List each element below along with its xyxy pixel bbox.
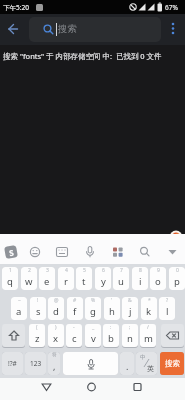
staticText: : bbox=[110, 324, 112, 331]
button[interactable] bbox=[4, 20, 22, 38]
staticText: , bbox=[53, 360, 56, 372]
button[interactable]: 8 bbox=[132, 267, 148, 290]
staticText: j bbox=[129, 305, 132, 318]
staticText: 1 bbox=[9, 267, 12, 274]
staticText: t bbox=[82, 275, 86, 288]
staticText: c bbox=[72, 332, 77, 345]
staticText: 2 bbox=[28, 267, 31, 274]
staticText: S bbox=[8, 247, 15, 258]
button[interactable]: ) bbox=[48, 324, 64, 347]
staticText: q bbox=[7, 275, 13, 288]
button[interactable]: 4 bbox=[58, 267, 74, 290]
staticText: 下午5:20 bbox=[3, 3, 29, 12]
staticText: a bbox=[16, 305, 22, 318]
staticText: @ bbox=[54, 297, 59, 304]
staticText: 搜索 "fonts" 于 内部存储空间 中: 已找到 0 文件 bbox=[3, 51, 162, 61]
staticText: r bbox=[64, 275, 68, 288]
button[interactable]: % bbox=[85, 297, 101, 320]
staticText: 7 bbox=[120, 267, 123, 274]
staticText: ; bbox=[129, 324, 131, 331]
staticText: z bbox=[35, 332, 40, 345]
staticText: x bbox=[53, 332, 59, 345]
button[interactable]: 5 bbox=[76, 267, 92, 290]
button[interactable] bbox=[81, 376, 102, 397]
button[interactable]: 9 bbox=[150, 267, 166, 290]
button[interactable]: S bbox=[4, 245, 18, 259]
button[interactable]: ~ bbox=[11, 297, 27, 320]
staticText: d bbox=[53, 305, 59, 318]
staticText: k bbox=[146, 305, 152, 318]
staticText: 8 bbox=[139, 267, 142, 274]
staticText: 3 bbox=[46, 267, 49, 274]
button[interactable] bbox=[127, 376, 148, 397]
button[interactable] bbox=[164, 19, 182, 37]
button[interactable]: 7 bbox=[113, 267, 129, 290]
button[interactable]: !?# bbox=[2, 352, 23, 375]
button[interactable]: ? bbox=[159, 297, 175, 320]
button[interactable]: 符 bbox=[48, 352, 60, 375]
button[interactable]: 1 bbox=[2, 267, 18, 290]
staticText: ! bbox=[37, 297, 39, 304]
staticText: ( bbox=[36, 324, 38, 331]
staticText: ? bbox=[166, 297, 169, 304]
button[interactable]: : bbox=[103, 324, 119, 347]
button[interactable]: ! bbox=[30, 297, 46, 320]
button[interactable]: @ bbox=[48, 297, 64, 320]
staticText: # bbox=[73, 297, 77, 304]
button[interactable] bbox=[63, 352, 118, 375]
button[interactable]: * bbox=[141, 297, 157, 320]
staticText: 中 bbox=[140, 354, 146, 361]
staticText: 搜索 bbox=[165, 359, 180, 368]
staticText: 6 bbox=[102, 267, 105, 274]
button[interactable]: 中 bbox=[136, 352, 157, 375]
staticText: * bbox=[148, 297, 151, 304]
button[interactable]: . bbox=[120, 352, 134, 375]
button[interactable]: - bbox=[66, 324, 82, 347]
button[interactable]: _ bbox=[85, 324, 101, 347]
staticText: 0 bbox=[176, 267, 179, 274]
staticText: p bbox=[174, 275, 180, 288]
staticText: & bbox=[128, 297, 132, 304]
button[interactable]: 6 bbox=[95, 267, 111, 290]
staticText: 英 bbox=[147, 364, 154, 373]
button[interactable]: ; bbox=[122, 324, 138, 347]
button[interactable]: 3 bbox=[39, 267, 55, 290]
staticText: o bbox=[155, 275, 161, 288]
staticText: 123 bbox=[30, 359, 42, 368]
staticText: . bbox=[126, 360, 129, 372]
button[interactable]: 搜索 bbox=[160, 352, 184, 375]
staticText: 9 bbox=[157, 267, 160, 274]
staticText: u bbox=[118, 275, 124, 288]
button[interactable]: 搜索 bbox=[29, 17, 161, 42]
staticText: h bbox=[109, 305, 115, 318]
staticText: m bbox=[144, 332, 153, 345]
button[interactable] bbox=[161, 324, 184, 347]
staticText: !?# bbox=[8, 359, 17, 368]
staticText: v bbox=[91, 332, 96, 345]
staticText: 4 bbox=[65, 267, 68, 274]
button[interactable]: 123 bbox=[25, 352, 46, 375]
staticText: s bbox=[36, 305, 41, 318]
staticText: % bbox=[91, 297, 96, 304]
staticText: ' bbox=[111, 297, 113, 304]
staticText: e bbox=[44, 275, 50, 288]
staticText: y bbox=[101, 275, 106, 288]
staticText: f bbox=[73, 305, 77, 318]
staticText: 67% bbox=[165, 3, 178, 12]
button[interactable]: / bbox=[140, 324, 156, 347]
staticText: n bbox=[127, 332, 133, 345]
staticText: ~ bbox=[18, 297, 21, 304]
button[interactable] bbox=[36, 376, 57, 397]
staticText: - bbox=[73, 324, 75, 331]
button[interactable]: ( bbox=[29, 324, 45, 347]
button[interactable] bbox=[2, 324, 25, 347]
button[interactable]: 2 bbox=[21, 267, 37, 290]
staticText: _ bbox=[92, 324, 95, 331]
button[interactable]: & bbox=[122, 297, 138, 320]
button[interactable]: # bbox=[67, 297, 83, 320]
staticText: / bbox=[147, 324, 149, 331]
staticText: 5 bbox=[83, 267, 86, 274]
button[interactable]: ' bbox=[104, 297, 120, 320]
staticText: w bbox=[25, 275, 33, 288]
button[interactable]: 0 bbox=[169, 267, 185, 290]
